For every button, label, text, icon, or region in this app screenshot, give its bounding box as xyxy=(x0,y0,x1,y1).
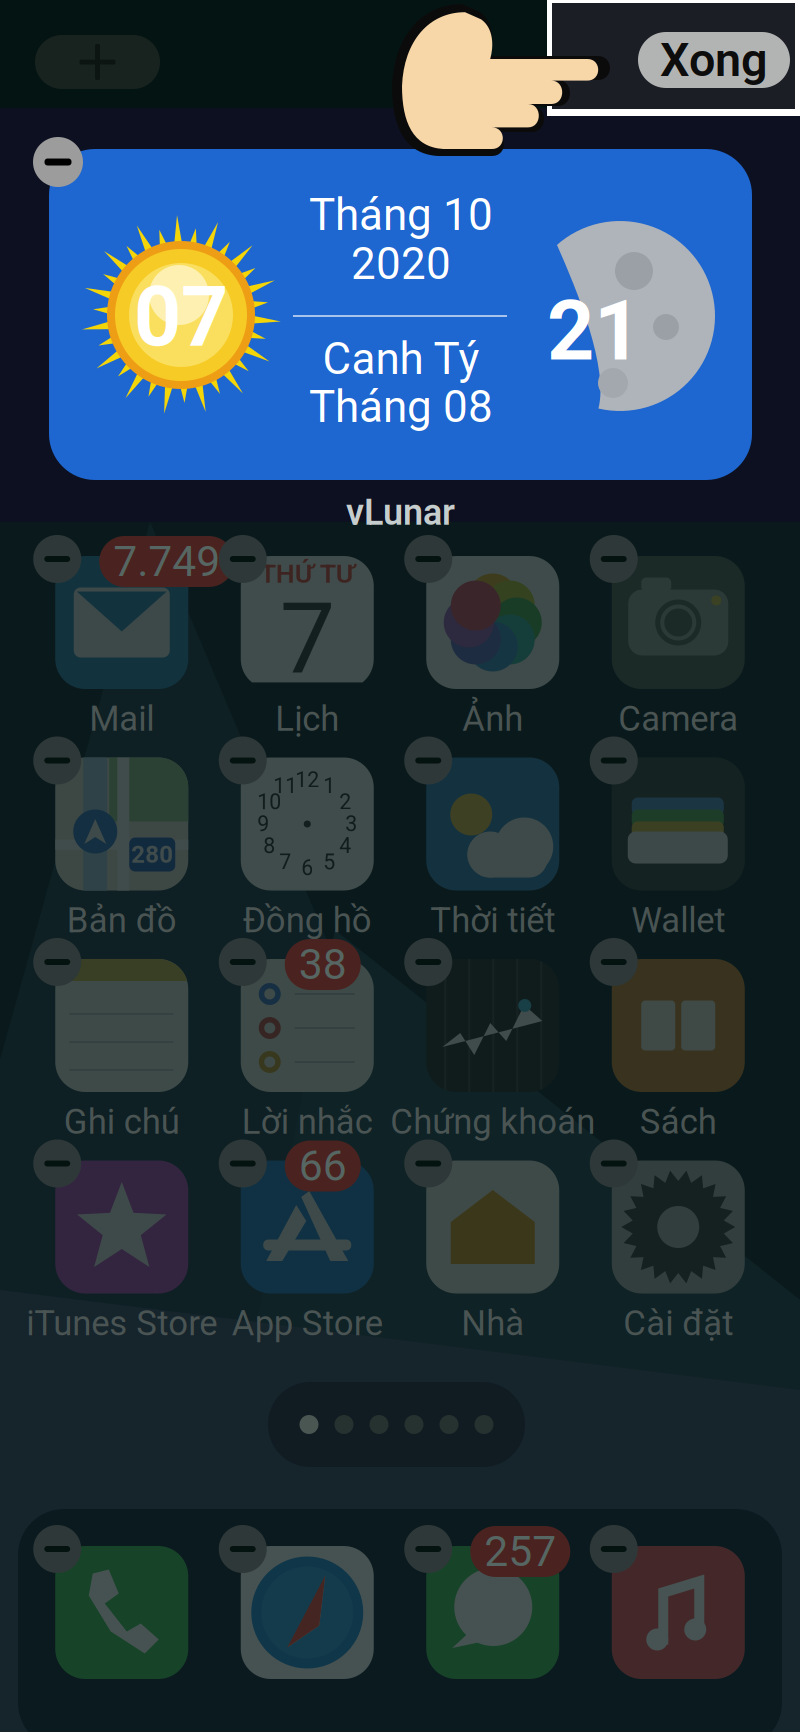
staticText: 1 xyxy=(323,774,335,798)
button[interactable]: Remove app xyxy=(219,938,267,986)
button[interactable]: Camera xyxy=(585,556,771,752)
button[interactable]: Remove app xyxy=(404,535,452,583)
button[interactable]: Nhà xyxy=(400,1160,585,1356)
staticText: Nhà xyxy=(461,1303,524,1343)
staticText: 66 xyxy=(299,1142,347,1190)
staticText: Lời nhắc xyxy=(242,1102,373,1142)
staticText: Mail xyxy=(89,699,154,739)
staticText: Ảnh xyxy=(462,699,523,739)
button[interactable]: Remove app xyxy=(33,736,81,784)
button[interactable]: Remove app xyxy=(33,1525,81,1573)
button[interactable]: Remove app xyxy=(33,938,81,986)
button[interactable]: THỨ TƯ xyxy=(214,556,400,752)
button[interactable]: Remove app xyxy=(590,1525,638,1573)
button[interactable]: Ảnh xyxy=(400,556,585,752)
button[interactable]: Remove app xyxy=(404,1139,452,1187)
button[interactable]: Remove app xyxy=(590,1139,638,1187)
staticText: 11 xyxy=(273,774,297,798)
button[interactable] xyxy=(29,1546,214,1732)
button[interactable]: Xong xyxy=(638,32,790,88)
button[interactable]: Remove app xyxy=(404,736,452,784)
staticText: Cài đặt xyxy=(623,1303,733,1343)
staticText: Canh Tý xyxy=(322,334,479,384)
staticText: Xong xyxy=(660,33,768,87)
button[interactable]: Remove app xyxy=(219,736,267,784)
button[interactable]: App Store xyxy=(214,1160,400,1356)
staticText: 257 xyxy=(484,1527,556,1576)
staticText: Chứng khoán xyxy=(390,1102,595,1142)
staticText: 9 xyxy=(257,812,269,836)
staticText: 3 xyxy=(345,812,357,836)
staticText: 7 xyxy=(280,583,335,696)
staticText: 6 xyxy=(301,856,313,880)
button[interactable]: Remove app xyxy=(590,938,638,986)
staticText: 2020 xyxy=(351,239,451,289)
button[interactable] xyxy=(214,1546,400,1732)
button[interactable]: Remove app xyxy=(33,1139,81,1187)
staticText: Tháng 08 xyxy=(309,382,493,432)
button[interactable]: Ghi chú xyxy=(29,959,214,1155)
button[interactable]: Remove app xyxy=(219,1139,267,1187)
staticText: 280 xyxy=(131,841,173,868)
staticText: Sách xyxy=(640,1102,717,1142)
staticText: Wallet xyxy=(631,900,725,940)
staticText: THỨ TƯ xyxy=(260,558,355,589)
staticText: 8 xyxy=(263,834,275,858)
button[interactable]: Remove app xyxy=(590,736,638,784)
staticText: Thời tiết xyxy=(430,900,555,940)
button[interactable]: Remove app xyxy=(590,535,638,583)
button[interactable] xyxy=(585,1546,771,1732)
staticText: 10 xyxy=(257,790,281,814)
button[interactable]: Remove app xyxy=(404,1525,452,1573)
button[interactable]: Sách xyxy=(585,959,771,1155)
button[interactable]: Remove app xyxy=(404,938,452,986)
button[interactable]: Remove app xyxy=(219,1525,267,1573)
button[interactable]: iTunes Store xyxy=(29,1160,214,1356)
staticText: Đồng hồ xyxy=(243,900,372,940)
button[interactable]: 257 xyxy=(400,1546,585,1732)
button[interactable]: Wallet xyxy=(585,757,771,953)
staticText: 5 xyxy=(323,850,335,874)
button[interactable]: Lời nhắc xyxy=(214,959,400,1155)
button[interactable]: Add widget xyxy=(35,35,160,89)
button[interactable]: Chứng khoán xyxy=(400,959,585,1155)
button[interactable]: Thời tiết xyxy=(400,757,585,953)
staticText: 12 xyxy=(295,768,319,792)
staticText: 38 xyxy=(299,940,347,989)
staticText: App Store xyxy=(232,1303,383,1343)
staticText: Ghi chú xyxy=(64,1102,180,1142)
staticText: 21 xyxy=(547,284,641,378)
staticText: Bản đồ xyxy=(67,900,177,940)
button[interactable]: Mail xyxy=(29,556,214,752)
staticText: Camera xyxy=(618,699,738,739)
button[interactable]: 280 xyxy=(29,757,214,953)
button[interactable]: 12 xyxy=(214,757,400,953)
staticText: 07 xyxy=(134,270,228,364)
staticText: 2 xyxy=(339,790,351,814)
staticText: 7 xyxy=(279,850,291,874)
button[interactable]: Cài đặt xyxy=(585,1160,771,1356)
button[interactable]: Remove app xyxy=(219,535,267,583)
button[interactable]: Remove widget xyxy=(33,137,83,187)
staticText: Lịch xyxy=(275,699,339,739)
button[interactable]: 07 xyxy=(49,149,752,480)
button[interactable]: Remove app xyxy=(33,535,81,583)
staticText: 7.749 xyxy=(113,537,220,586)
staticText: iTunes Store xyxy=(26,1303,217,1343)
staticText: vLunar xyxy=(346,492,455,533)
staticText: 4 xyxy=(339,834,351,858)
staticText: Tháng 10 xyxy=(309,190,493,240)
